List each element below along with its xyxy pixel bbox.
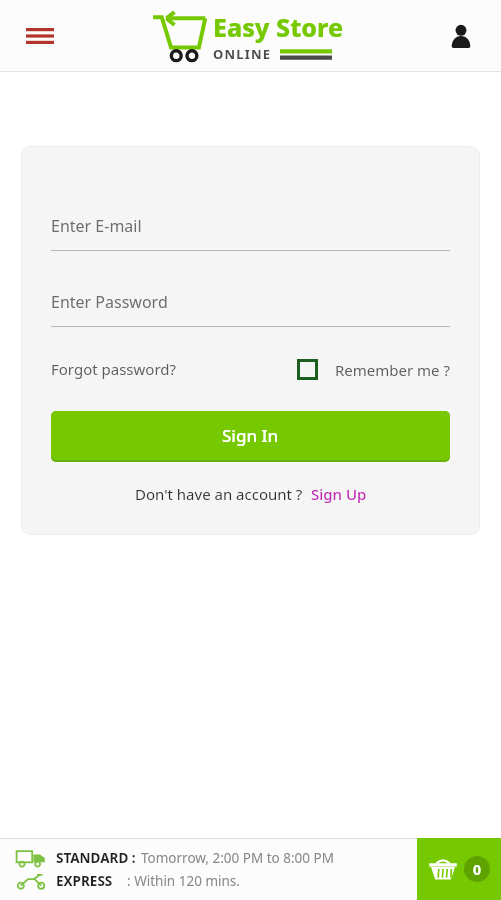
- staticText: : Within 120 mins.: [127, 872, 240, 890]
- staticText: 0: [473, 860, 482, 879]
- staticText: STANDARD :: [56, 849, 136, 867]
- staticText: Forgot password?: [51, 359, 177, 379]
- button[interactable]: Sign Up: [311, 484, 367, 504]
- staticText: Tomorrow, 2:00 PM to 8:00 PM: [141, 849, 334, 867]
- button[interactable]: Sign In: [51, 411, 450, 460]
- staticText: EXPRESS: [56, 872, 113, 890]
- button[interactable]: Remember me ?: [297, 359, 450, 380]
- staticText: Sign Up: [311, 484, 367, 504]
- button[interactable]: Forgot password?: [51, 355, 177, 383]
- button[interactable]: Account: [439, 14, 483, 58]
- staticText: Enter Password: [51, 291, 168, 313]
- button[interactable]: Menu: [18, 14, 62, 58]
- staticText: Easy Store: [213, 10, 344, 44]
- button[interactable]: Enter E-mail: [51, 208, 450, 250]
- staticText: Remember me ?: [335, 360, 450, 380]
- staticText: Sign In: [222, 424, 279, 447]
- staticText: ONLINE: [213, 45, 272, 63]
- staticText: Enter E-mail: [51, 215, 142, 237]
- button[interactable]: Cart: [417, 838, 501, 900]
- button[interactable]: Enter Password: [51, 284, 450, 326]
- staticText: Don't have an account ?: [135, 484, 303, 504]
